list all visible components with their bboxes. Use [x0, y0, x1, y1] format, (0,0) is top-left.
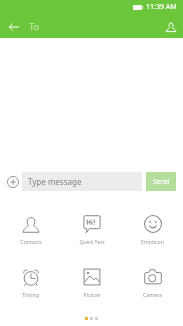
staticText: Camera [143, 291, 162, 298]
staticText: Contacts [20, 238, 42, 245]
staticText: Quick Text [79, 238, 105, 245]
button[interactable]: Add recipient [159, 15, 183, 38]
button[interactable]: Send [146, 172, 176, 191]
staticText: 11:39 AM [146, 2, 177, 12]
button[interactable]: Add attachment [4, 173, 22, 191]
button[interactable]: Emoticon [122, 210, 183, 263]
button[interactable]: Picture [61, 263, 122, 316]
button[interactable]: Camera [122, 263, 183, 316]
button[interactable]: Contacts [0, 210, 61, 263]
staticText: Send [153, 177, 170, 187]
staticText: Timing [22, 291, 39, 298]
button[interactable]: Type message [22, 172, 142, 191]
staticText: Picture [83, 291, 101, 298]
staticText: Emoticon [141, 238, 164, 245]
button[interactable]: Quick Text [61, 210, 122, 263]
button[interactable]: Back [2, 15, 26, 38]
button[interactable]: Timing [0, 263, 61, 316]
staticText: To [29, 20, 40, 33]
staticText: Type message [28, 176, 82, 187]
